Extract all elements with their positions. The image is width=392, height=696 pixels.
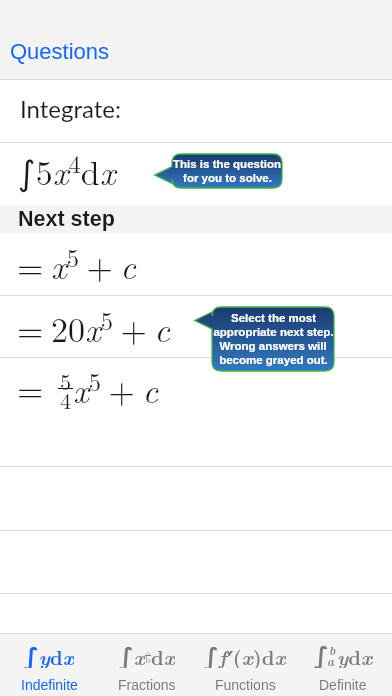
staticText: Next step xyxy=(18,207,115,231)
staticText: Wrong answers will xyxy=(219,340,327,353)
button[interactable]: Indefinite integrals xyxy=(0,634,98,696)
staticText: Integrate: xyxy=(20,94,121,123)
staticText: b xyxy=(329,641,336,658)
staticText: b xyxy=(145,653,151,666)
staticText: Select the most xyxy=(231,312,316,325)
staticText: = xyxy=(17,364,44,412)
staticText: ∫x xyxy=(119,642,145,668)
staticText: a xyxy=(327,652,335,669)
other: Definite integrals xyxy=(314,642,373,668)
other: Fractions xyxy=(119,642,175,668)
button[interactable]: = x5 + c xyxy=(0,233,392,295)
staticText: Functions xyxy=(215,677,276,693)
staticText: for you to solve. xyxy=(183,172,272,185)
staticText: ydx xyxy=(337,642,373,668)
staticText: appropriate next step. xyxy=(213,326,334,339)
staticText: dx xyxy=(151,642,175,668)
staticText: Definite xyxy=(319,677,367,693)
staticText: ∫ydx xyxy=(24,642,74,668)
staticText: = 20x5 + c xyxy=(17,302,170,352)
button[interactable]: Functions xyxy=(196,634,294,696)
button[interactable]: = xyxy=(0,358,392,466)
button[interactable]: Questions xyxy=(0,33,122,79)
staticText: 5 xyxy=(60,365,72,397)
staticText: This is the question xyxy=(173,158,281,171)
staticText: x5 + c xyxy=(73,363,159,413)
staticText: Indefinite xyxy=(21,677,78,693)
staticText: Fractions xyxy=(118,677,176,693)
button[interactable]: Fractions xyxy=(98,634,196,696)
button[interactable]: = 20x5 + c xyxy=(0,296,392,357)
staticText: ∫f′(x)dx xyxy=(204,642,286,668)
staticText: a xyxy=(146,646,151,659)
staticText: ∫5x4dx xyxy=(18,145,116,195)
staticText: 4 xyxy=(60,384,72,416)
staticText: = x5 + c xyxy=(17,239,136,289)
staticText: ∫ xyxy=(314,642,329,668)
button[interactable]: Definite integrals xyxy=(294,634,392,696)
staticText: become grayed out. xyxy=(219,354,328,367)
